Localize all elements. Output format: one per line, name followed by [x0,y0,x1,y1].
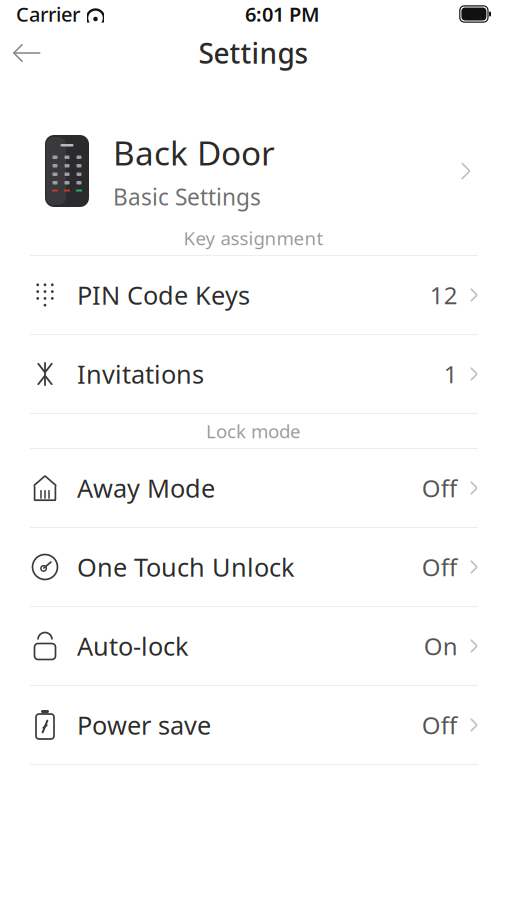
staticText: Basic Settings [113,182,261,212]
staticText: 6:01 PM [245,1,320,27]
staticText: PIN Code Keys [77,278,250,312]
staticText: One Touch Unlock [77,550,295,584]
staticText: Off [422,551,458,583]
button[interactable]: Back [0,31,54,75]
button[interactable]: Power save [0,686,507,764]
button[interactable]: Away Mode [0,449,507,527]
staticText: Invitations [77,357,204,391]
staticText: Away Mode [77,471,215,505]
staticText: Carrier [16,1,80,27]
staticText: Power save [77,708,211,742]
staticText: Lock mode [206,419,301,443]
button[interactable]: Back Door [0,121,507,221]
staticText: Settings [198,34,308,72]
button[interactable]: PIN Code Keys [0,256,507,334]
staticText: 12 [430,279,458,311]
staticText: Key assignment [183,226,323,250]
staticText: On [424,630,458,662]
staticText: Off [422,472,458,504]
button[interactable]: Invitations [0,335,507,413]
button[interactable]: Auto-lock [0,607,507,685]
button[interactable]: One Touch Unlock [0,528,507,606]
staticText: Back Door [113,130,275,175]
staticText: Off [422,709,458,741]
staticText: 1 [444,358,458,390]
staticText: Auto-lock [77,629,189,663]
